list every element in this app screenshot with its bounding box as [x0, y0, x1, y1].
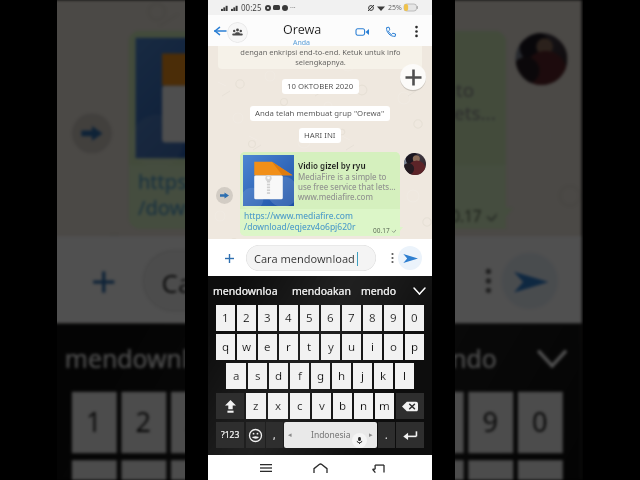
staticText: 7 — [348, 310, 355, 326]
button[interactable]: h — [332, 363, 351, 389]
button[interactable]: Send — [501, 253, 558, 309]
button[interactable]: Anda telah membuat grup "Orewa" — [255, 108, 385, 119]
button[interactable]: 5 — [300, 305, 319, 331]
staticText: Vidio gizel by ryu — [298, 160, 366, 171]
button[interactable]: Attach — [218, 247, 240, 269]
button[interactable]: s — [248, 363, 267, 389]
button[interactable]: t — [300, 334, 319, 360]
button[interactable]: 4 — [221, 392, 265, 453]
button[interactable]: Send — [398, 246, 422, 270]
button[interactable]: o — [468, 460, 513, 480]
button[interactable]: Enter — [396, 422, 424, 448]
button[interactable]: n — [354, 393, 373, 419]
button[interactable]: 1 — [216, 305, 235, 331]
button[interactable]: More — [385, 250, 400, 265]
button[interactable]: 2 — [121, 392, 166, 453]
button[interactable]: Emoji — [246, 422, 265, 448]
button[interactable]: 7 — [369, 392, 414, 453]
button[interactable]: w — [237, 334, 256, 360]
button[interactable]: l — [395, 363, 414, 389]
button[interactable]: 6 — [321, 305, 340, 331]
button[interactable]: x — [268, 393, 288, 419]
button[interactable]: u — [369, 460, 414, 480]
button[interactable]: j — [353, 363, 372, 389]
button[interactable]: 10 OKTOBER 2020 — [287, 81, 354, 92]
button[interactable]: Voice call — [381, 22, 401, 42]
button[interactable]: c — [290, 393, 310, 419]
button[interactable]: r — [221, 460, 265, 480]
button[interactable]: b — [333, 393, 352, 419]
button[interactable]: z — [246, 393, 266, 419]
button[interactable]: ◂ — [284, 422, 377, 448]
button[interactable]: Cara mendownload — [143, 250, 449, 312]
button[interactable]: mendownloa — [53, 323, 230, 392]
button[interactable]: 4 — [279, 305, 298, 331]
button[interactable]: 0 — [518, 392, 563, 453]
button[interactable]: Back — [211, 22, 229, 40]
button[interactable]: Backspace — [396, 393, 424, 419]
button[interactable]: u — [342, 334, 361, 360]
button[interactable]: i — [419, 460, 464, 480]
button[interactable]: i — [363, 334, 382, 360]
button[interactable]: 9 — [384, 305, 403, 331]
button[interactable]: . — [378, 422, 395, 448]
button[interactable]: 1 — [72, 392, 117, 453]
button[interactable]: k — [374, 363, 393, 389]
button[interactable]: mendownloa — [208, 276, 283, 305]
button[interactable]: 8 — [363, 305, 382, 331]
button[interactable]: y — [321, 334, 340, 360]
button[interactable]: f — [290, 363, 309, 389]
button[interactable]: e — [171, 460, 216, 480]
button[interactable]: g — [311, 363, 330, 389]
button[interactable]: w — [121, 460, 166, 480]
button[interactable]: , — [266, 422, 283, 448]
button[interactable]: Back — [366, 456, 390, 480]
button[interactable]: 3 — [258, 305, 277, 331]
button[interactable]: 0 — [405, 305, 424, 331]
button[interactable]: t — [270, 460, 315, 480]
button[interactable]: mendoakan — [283, 276, 359, 305]
button[interactable]: 8 — [419, 392, 464, 453]
button[interactable]: q — [72, 460, 117, 480]
staticText: l — [403, 368, 406, 384]
button[interactable]: More options — [407, 22, 425, 40]
button[interactable]: r — [279, 334, 298, 360]
button[interactable]: mendo — [409, 323, 520, 392]
button[interactable]: 7 — [342, 305, 361, 331]
staticText: p — [532, 472, 551, 480]
button[interactable]: p — [405, 334, 424, 360]
button[interactable]: 6 — [320, 392, 364, 453]
button[interactable]: d — [269, 363, 288, 389]
button[interactable]: Group info — [227, 22, 248, 43]
button[interactable]: mendo — [359, 276, 406, 305]
button[interactable]: More — [471, 262, 506, 297]
button[interactable]: o — [384, 334, 403, 360]
button[interactable]: 9 — [468, 392, 513, 453]
staticText: j — [361, 368, 364, 384]
button[interactable]: Expand suggestions — [520, 323, 582, 392]
button[interactable]: 2 — [237, 305, 256, 331]
button[interactable]: Cara mendownload — [246, 245, 376, 271]
button[interactable]: Shift — [216, 393, 244, 419]
button[interactable]: Scroll to bottom — [400, 64, 426, 90]
button[interactable]: Video call — [352, 22, 372, 42]
button[interactable]: Recent apps — [254, 456, 278, 480]
button[interactable]: Attach — [77, 255, 128, 307]
button[interactable]: HARI INI — [304, 130, 336, 141]
button[interactable]: Orewa — [262, 21, 342, 48]
button[interactable]: Home — [308, 456, 332, 480]
button[interactable]: m — [375, 393, 394, 419]
button[interactable]: v — [312, 393, 331, 419]
button[interactable]: ?123 — [216, 422, 244, 448]
button[interactable]: 5 — [270, 392, 315, 453]
button[interactable]: y — [320, 460, 364, 480]
button[interactable]: mendoakan — [230, 323, 409, 392]
button[interactable]: a — [226, 363, 246, 389]
button[interactable]: e — [258, 334, 277, 360]
button[interactable]: p — [518, 460, 563, 480]
button[interactable]: Expand suggestions — [406, 276, 432, 305]
button[interactable]: 3 — [171, 392, 216, 453]
button[interactable]: q — [216, 334, 235, 360]
